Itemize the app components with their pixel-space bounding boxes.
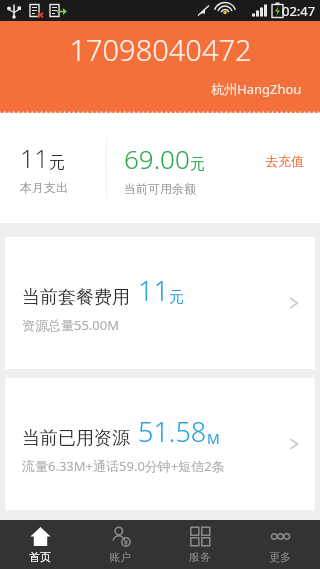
staticText: 去充值: [265, 153, 304, 169]
staticText: M: [207, 429, 220, 448]
staticText: 当前已用资源: [22, 427, 130, 450]
button[interactable]: 当前套餐费用: [5, 237, 315, 369]
staticText: 元: [190, 155, 205, 174]
staticText: 首页: [29, 550, 51, 564]
staticText: 元: [169, 288, 184, 307]
button[interactable]: 更多: [240, 520, 320, 569]
staticText: 元: [49, 153, 65, 173]
staticText: 69.00: [124, 141, 190, 176]
staticText: 51.58: [138, 413, 207, 450]
button[interactable]: 服务: [160, 520, 240, 569]
staticText: 11: [138, 272, 169, 309]
staticText: 当前套餐费用: [22, 286, 130, 309]
staticText: 17098040472: [69, 30, 252, 69]
button[interactable]: 账户: [80, 520, 160, 569]
staticText: 流量6.33M+通话59.0分钟+短信2条: [22, 457, 225, 475]
staticText: 杭州HangZhou: [211, 80, 302, 98]
button[interactable]: 首页: [0, 520, 80, 569]
button[interactable]: 去充值: [259, 149, 310, 173]
staticText: 当前可用余额: [124, 181, 196, 196]
staticText: 资源总量55.00M: [22, 316, 120, 334]
staticText: 11: [20, 141, 49, 175]
staticText: 账户: [109, 550, 131, 564]
staticText: 更多: [269, 550, 291, 564]
staticText: 服务: [189, 550, 211, 564]
staticText: 本月支出: [20, 180, 68, 195]
staticText: 02:47: [282, 2, 316, 20]
button[interactable]: 当前已用资源: [5, 378, 315, 510]
